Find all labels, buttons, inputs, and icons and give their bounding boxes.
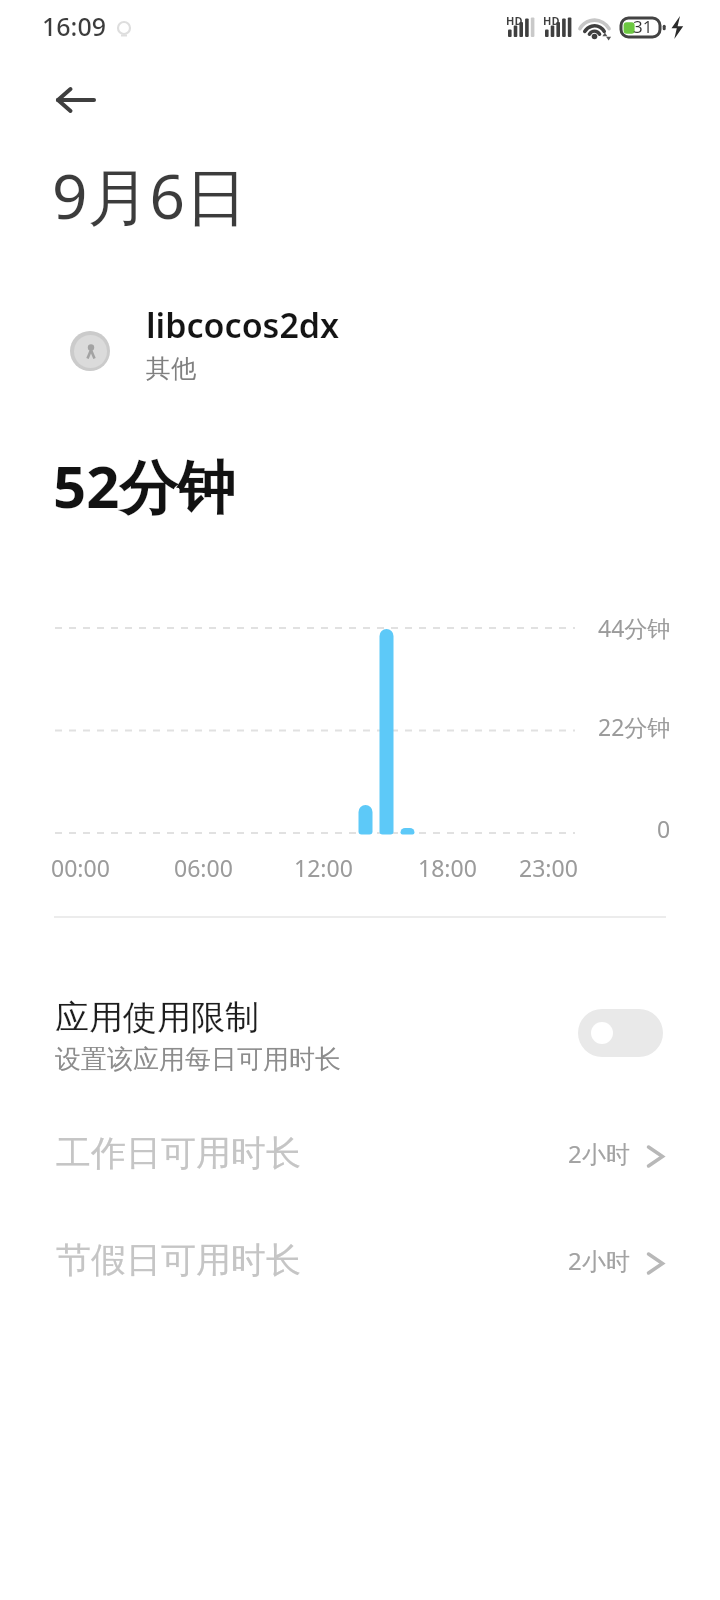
staticText: 应用使用限制 [55, 996, 259, 1039]
staticText: 00:00 [51, 852, 110, 883]
staticText: 0 [657, 813, 671, 844]
staticText: 节假日可用时长 [56, 1238, 301, 1282]
staticText: 工作日可用时长 [56, 1131, 301, 1175]
staticText: 22分钟 [598, 711, 671, 742]
staticText: 16:09 [42, 9, 107, 43]
staticText: 2小时 [568, 1244, 630, 1277]
button[interactable] [52, 318, 392, 384]
button[interactable] [0, 984, 720, 1076]
button[interactable] [578, 1009, 663, 1057]
staticText: 23:00 [519, 852, 578, 883]
staticText: 2小时 [568, 1137, 630, 1170]
staticText: 其他 [146, 353, 196, 384]
staticText: 44分钟 [598, 612, 671, 643]
button[interactable] [0, 1119, 720, 1183]
staticText: 18:00 [418, 852, 477, 883]
staticText: 9月6日 [52, 153, 247, 238]
button[interactable] [0, 1226, 720, 1290]
button[interactable] [44, 76, 108, 124]
staticText: libcocos2dx [146, 302, 340, 348]
staticText: 06:00 [174, 852, 233, 883]
staticText: HD [506, 13, 523, 28]
staticText: HD [543, 13, 560, 28]
staticText: 12:00 [294, 852, 353, 883]
staticText: 设置该应用每日可用时长 [55, 1043, 341, 1076]
staticText: 31 [633, 15, 653, 38]
staticText: 52分钟 [53, 446, 236, 525]
